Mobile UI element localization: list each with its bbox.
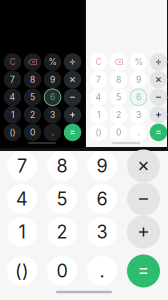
button[interactable]: Add [62,106,82,124]
staticText: 9 [50,74,55,85]
button[interactable]: C [2,53,22,71]
staticText: 4 [95,92,101,102]
staticText: 8 [30,74,35,85]
button[interactable]: Add [148,106,168,124]
staticText: 7 [96,74,101,85]
button[interactable]: Subtract [148,88,168,106]
button[interactable]: Equals [148,124,168,141]
staticText: 5 [30,92,35,102]
button[interactable]: 3 [82,215,122,249]
button[interactable]: Multiply [148,71,168,88]
staticText: 6 [50,92,55,102]
button[interactable]: . [128,124,148,141]
staticText: . [137,127,139,137]
staticText: 9 [136,74,141,85]
button[interactable]: ⌫ [108,53,128,71]
button[interactable]: 6 [128,88,148,106]
button[interactable]: 7 [88,71,108,88]
button[interactable]: 9 [82,149,122,183]
staticText: 7 [10,74,15,85]
staticText: 8 [56,155,67,177]
button[interactable]: 8 [42,149,82,183]
staticText: . [51,127,53,137]
button[interactable]: 7 [2,149,42,183]
button[interactable]: % [42,53,62,71]
button[interactable]: 5 [108,88,128,106]
button[interactable]: . [82,254,122,288]
button[interactable]: 6 [82,182,122,216]
button[interactable]: ⌫ [22,53,42,71]
staticText: 3 [50,110,55,120]
staticText: 4 [9,92,15,102]
button[interactable]: Subtract [62,88,82,106]
staticText: () [9,127,15,137]
staticText: 5 [56,188,67,210]
button[interactable]: 0 [42,254,82,288]
button[interactable]: 0 [108,124,128,141]
staticText: 3 [96,221,107,243]
button[interactable]: 3 [42,106,62,124]
staticText: % [48,57,56,67]
button[interactable]: () [2,124,22,141]
button[interactable]: 1 [88,106,108,124]
button[interactable]: Multiply [62,71,82,88]
staticText: 6 [136,92,141,102]
button[interactable]: 8 [22,71,42,88]
button[interactable]: Multiply [123,149,163,183]
button[interactable]: Add [123,215,163,249]
button[interactable]: Subtract [123,182,163,216]
button[interactable]: 4 [2,182,42,216]
button[interactable]: 7 [2,71,22,88]
button[interactable]: 3 [128,106,148,124]
staticText: . [99,260,104,282]
staticText: 2 [56,221,67,243]
button[interactable]: 9 [42,71,62,88]
staticText: C [95,57,101,67]
staticText: 3 [136,110,141,120]
button[interactable]: C [88,53,108,71]
staticText: 0 [116,127,121,137]
staticText: 1 [97,110,100,120]
staticText: % [134,57,142,67]
staticText: 2 [30,110,35,120]
staticText: 4 [16,188,28,210]
staticText: 7 [17,155,27,177]
staticText: 5 [116,92,121,102]
staticText: 8 [116,74,121,85]
button[interactable]: . [42,124,62,141]
button[interactable]: () [2,254,42,288]
button[interactable]: 2 [22,106,42,124]
staticText: 1 [11,110,14,120]
button[interactable]: 4 [2,88,22,106]
button[interactable]: Divide [62,53,82,71]
staticText: () [95,127,101,137]
button[interactable]: 1 [2,215,42,249]
button[interactable]: () [88,124,108,141]
button[interactable]: Divide [148,53,168,71]
staticText: 6 [96,188,107,210]
staticText: 0 [30,127,35,137]
staticText: C [9,57,15,67]
staticText: 2 [116,110,121,120]
staticText: 1 [18,221,25,243]
button[interactable]: 2 [42,215,82,249]
button[interactable]: 8 [108,71,128,88]
staticText: 0 [56,260,67,282]
button[interactable]: 2 [108,106,128,124]
button[interactable]: % [128,53,148,71]
button[interactable]: 1 [2,106,22,124]
button[interactable]: 5 [22,88,42,106]
button[interactable]: 6 [42,88,62,106]
button[interactable]: Equals [62,124,82,141]
button[interactable]: 4 [88,88,108,106]
button[interactable]: 9 [128,71,148,88]
staticText: () [15,260,29,282]
button[interactable]: 5 [42,182,82,216]
staticText: 9 [96,155,107,177]
button[interactable]: 0 [22,124,42,141]
button[interactable]: Equals [123,254,163,288]
